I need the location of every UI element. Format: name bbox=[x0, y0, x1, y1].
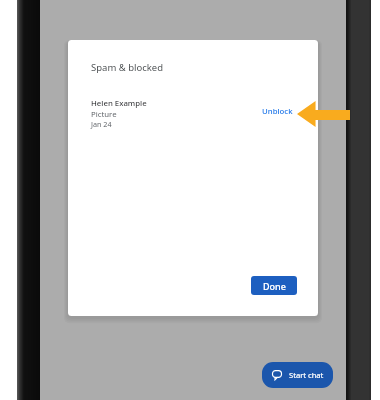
staticText: Start chat bbox=[289, 370, 324, 380]
button[interactable]: Unblock bbox=[262, 98, 293, 117]
staticText: Picture bbox=[91, 109, 117, 120]
staticText: Helen Example bbox=[91, 98, 147, 109]
staticText: Jan 24 bbox=[91, 119, 112, 129]
button[interactable]: Helen Example bbox=[68, 98, 318, 130]
button[interactable]: Done bbox=[251, 276, 297, 295]
other: Start chat bbox=[272, 370, 282, 380]
staticText: Spam & blocked bbox=[91, 61, 164, 74]
button[interactable]: Start chat bbox=[262, 362, 333, 388]
staticText: Done bbox=[263, 280, 286, 292]
